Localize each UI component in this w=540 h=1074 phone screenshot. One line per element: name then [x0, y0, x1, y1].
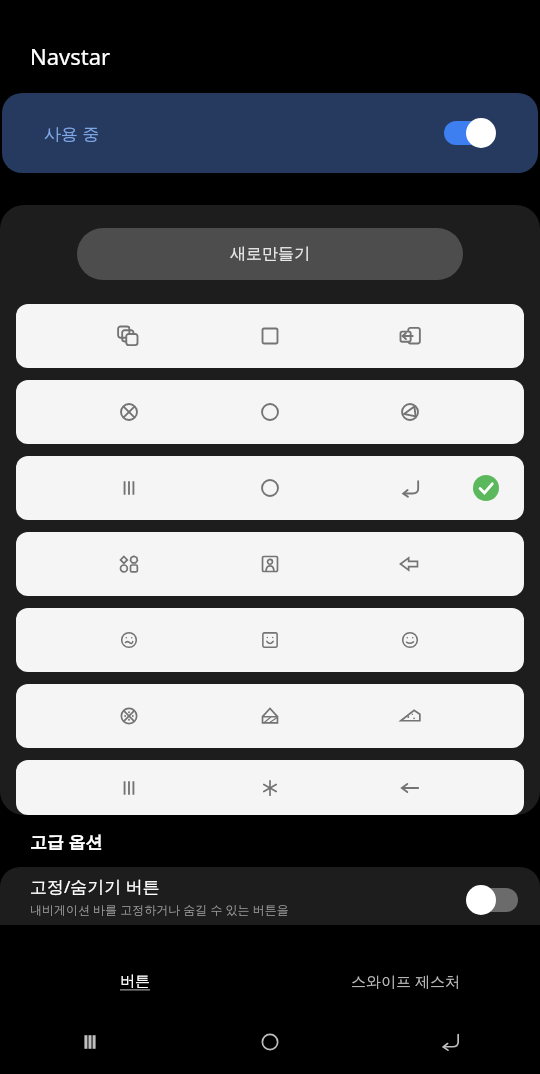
- button[interactable]: [16, 456, 524, 520]
- button[interactable]: Home: [180, 1010, 360, 1074]
- staticText: Navstar: [30, 41, 111, 71]
- button[interactable]: Enabled: [444, 118, 496, 148]
- button[interactable]: [16, 304, 524, 368]
- button[interactable]: [16, 532, 524, 596]
- button[interactable]: 고정/숨기기 버튼: [0, 867, 540, 925]
- staticText: 버튼: [120, 972, 150, 991]
- staticText: 내비게이션 바를 고정하거나 숨길 수 있는 버튼을: [30, 901, 289, 917]
- button[interactable]: [16, 608, 524, 672]
- button[interactable]: [16, 380, 524, 444]
- staticText: 고정/숨기기 버튼: [30, 875, 160, 898]
- button[interactable]: 스와이프 제스처: [270, 952, 540, 1010]
- staticText: 스와이프 제스처: [351, 971, 460, 991]
- staticText: 사용 중: [44, 122, 100, 145]
- button[interactable]: Disabled: [466, 885, 518, 915]
- staticText: 고급 옵션: [30, 830, 103, 853]
- button[interactable]: 새로만들기: [77, 228, 463, 280]
- button[interactable]: [16, 760, 524, 815]
- button[interactable]: 사용 중: [2, 93, 538, 173]
- button[interactable]: Recent apps: [0, 1010, 180, 1074]
- button[interactable]: 버튼: [0, 952, 270, 1010]
- staticText: 새로만들기: [230, 244, 310, 264]
- button[interactable]: Back: [360, 1010, 540, 1074]
- button[interactable]: [16, 684, 524, 748]
